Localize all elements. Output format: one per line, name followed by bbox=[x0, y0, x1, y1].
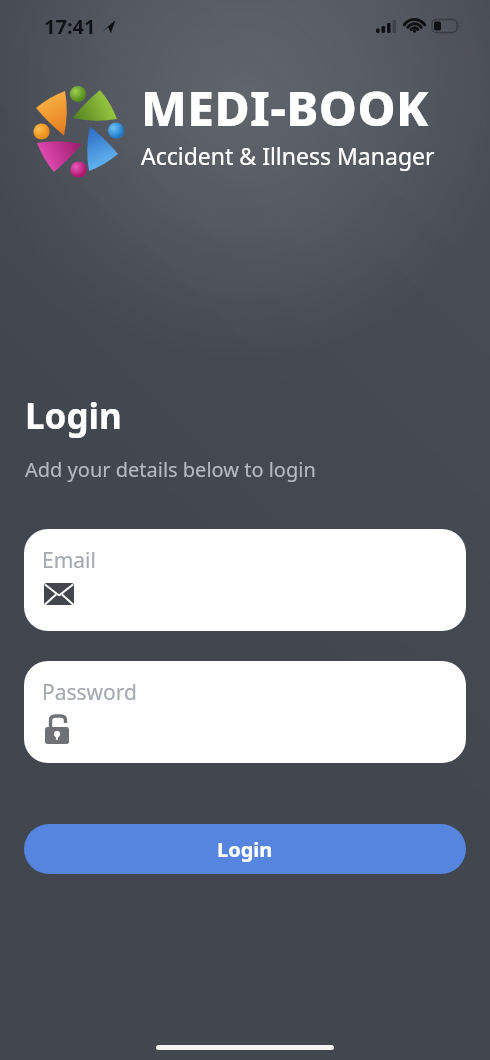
staticText: Login bbox=[217, 836, 273, 863]
button[interactable]: Password bbox=[24, 661, 466, 763]
staticText: Login bbox=[25, 392, 122, 440]
staticText: Email bbox=[42, 546, 96, 575]
button[interactable]: Login bbox=[24, 824, 466, 874]
staticText: Add your details below to login bbox=[25, 456, 316, 483]
staticText: Password bbox=[42, 678, 137, 707]
staticText: MEDI-BOOK bbox=[141, 75, 429, 140]
staticText: Accident & Illness Manager bbox=[141, 140, 435, 171]
staticText: 17:41 bbox=[44, 13, 96, 40]
button[interactable]: Email bbox=[24, 529, 466, 631]
